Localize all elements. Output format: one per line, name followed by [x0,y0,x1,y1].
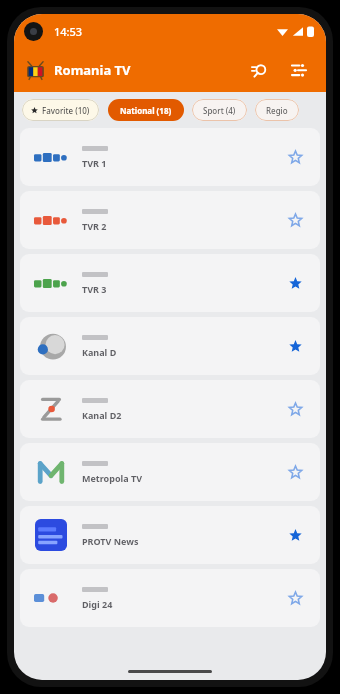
staticText: Favorite (10) [42,105,90,116]
button[interactable]: Search [244,55,274,85]
button[interactable]: Favorite (10) [22,99,99,121]
staticText: Regio [266,105,288,116]
button[interactable]: Add favorite [280,457,310,487]
staticText: PROTV News [82,535,139,547]
staticText: Sport (4) [203,105,236,116]
button[interactable]: Regio [255,99,299,121]
staticText: TVR 2 [82,220,107,232]
button[interactable]: Remove favorite [280,331,310,361]
button[interactable]: Remove favorite [280,268,310,298]
button[interactable]: Add favorite [280,394,310,424]
staticText: National (18) [120,105,172,116]
staticText: 14:53 [54,24,83,39]
staticText: TVR 1 [82,157,107,169]
button[interactable]: TVR 1 [20,128,320,186]
staticText: Metropola TV [82,472,143,484]
button[interactable]: TVR 2 [20,191,320,249]
staticText: Romania TV [54,61,131,79]
button[interactable]: Add favorite [280,205,310,235]
button[interactable]: TVR 3 [20,254,320,312]
button[interactable]: Sort [284,55,314,85]
button[interactable]: Kanal D [20,317,320,375]
button[interactable]: Add favorite [280,583,310,613]
staticText: TVR 3 [82,283,107,295]
button[interactable]: PROTV News [20,506,320,564]
staticText: Digi 24 [82,598,113,610]
button[interactable]: National (18) [108,99,184,121]
button[interactable]: Remove favorite [280,520,310,550]
staticText: Kanal D2 [82,409,122,421]
staticText: Kanal D [82,346,117,358]
button[interactable]: Add favorite [280,142,310,172]
button[interactable]: Metropola TV [20,443,320,501]
button[interactable]: Kanal D2 [20,380,320,438]
button[interactable]: Sport (4) [192,99,247,121]
button[interactable]: Digi 24 [20,569,320,627]
